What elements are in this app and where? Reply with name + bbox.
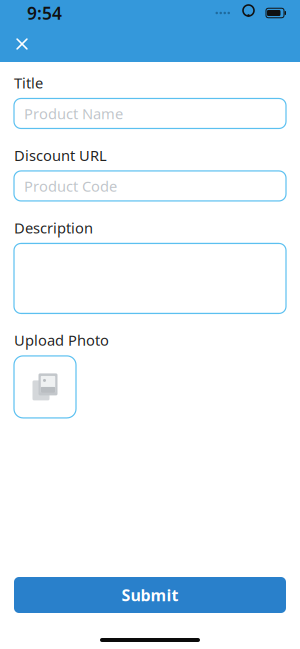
staticText: 9:54 [27, 1, 62, 24]
staticText: Description [14, 218, 93, 237]
staticText: Discount URL [14, 145, 107, 165]
staticText: Product Code [24, 176, 117, 196]
button[interactable]: Close [2, 30, 42, 58]
staticText: Upload Photo [14, 330, 109, 350]
button[interactable]: Upload Photo [14, 356, 76, 418]
button[interactable]: Submit [14, 577, 286, 613]
staticText: Title [14, 73, 43, 92]
staticText: Product Name [24, 104, 123, 123]
staticText: Submit [121, 584, 178, 606]
